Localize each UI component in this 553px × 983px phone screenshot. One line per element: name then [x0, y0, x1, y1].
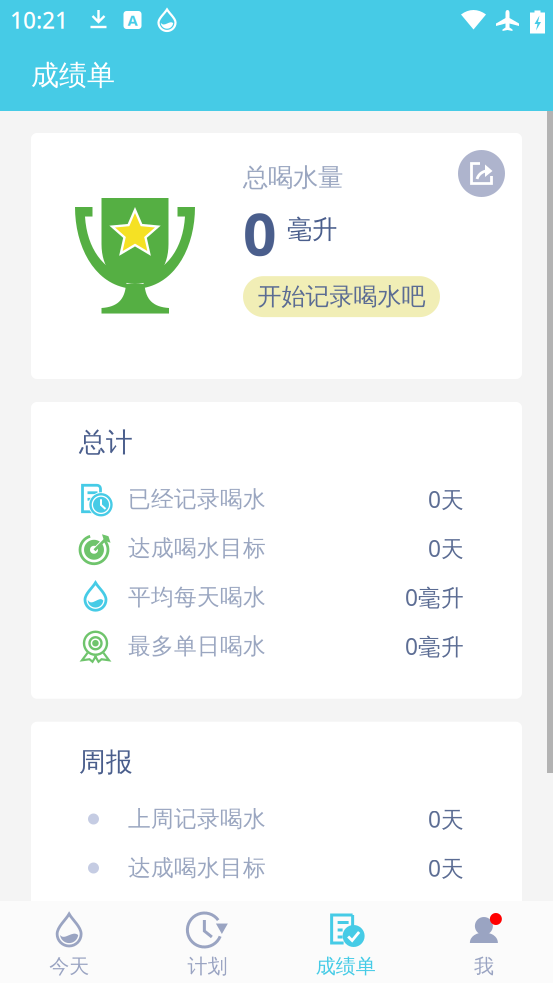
- staticText: 0天: [428, 533, 464, 563]
- staticText: A: [127, 10, 137, 30]
- staticText: 0毫升: [405, 582, 464, 612]
- button[interactable]: 计划: [138, 901, 276, 983]
- staticText: 最多单日喝水: [128, 632, 266, 660]
- staticText: 达成喝水目标: [128, 854, 266, 882]
- staticText: 0天: [428, 804, 464, 834]
- staticText: 0毫升: [405, 631, 464, 661]
- button[interactable]: 我: [415, 901, 553, 983]
- staticText: 0: [243, 194, 277, 272]
- staticText: 我: [474, 954, 494, 979]
- staticText: 平均每天喝水: [128, 583, 266, 611]
- staticText: 开始记录喝水吧: [257, 282, 425, 311]
- staticText: 0天: [428, 853, 464, 883]
- staticText: 达成喝水目标: [128, 534, 266, 562]
- staticText: 成绩单: [316, 954, 376, 979]
- staticText: 周报: [79, 746, 133, 779]
- staticText: 总计: [79, 426, 133, 459]
- staticText: 已经记录喝水: [128, 485, 266, 513]
- button[interactable]: 开始记录喝水吧: [243, 276, 440, 317]
- staticText: 平均每天喝水: [128, 903, 266, 931]
- staticText: 毫升: [287, 214, 337, 245]
- button[interactable]: 今天: [0, 901, 138, 983]
- staticText: 上周记录喝水: [128, 805, 266, 833]
- staticText: 今天: [49, 954, 89, 979]
- staticText: 10:21: [10, 5, 68, 35]
- staticText: 计划: [187, 954, 227, 979]
- staticText: 总喝水量: [243, 162, 343, 193]
- button[interactable]: Share: [458, 150, 505, 197]
- button[interactable]: 成绩单: [276, 901, 415, 983]
- staticText: 成绩单: [31, 58, 115, 93]
- staticText: 0天: [428, 484, 464, 514]
